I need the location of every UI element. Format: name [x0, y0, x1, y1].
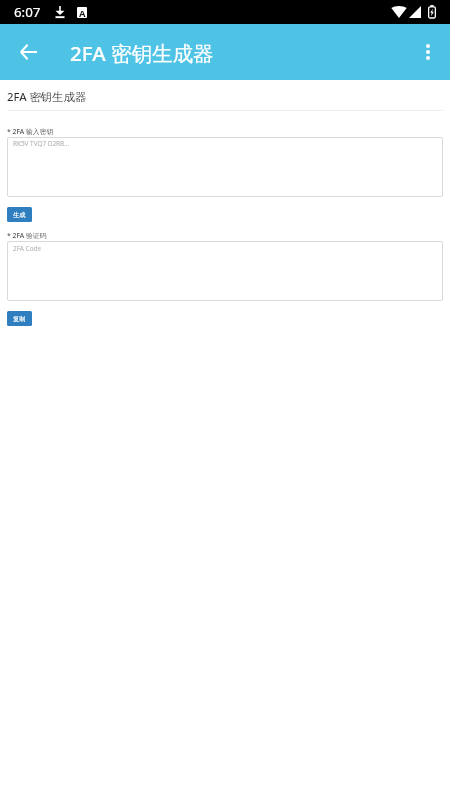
- button[interactable]: RK5V TVQ7 D2RB...: [7, 137, 443, 197]
- staticText: A: [79, 7, 86, 18]
- staticText: RK5V TVQ7 D2RB...: [13, 139, 70, 148]
- staticText: 2FA 密钥生成器: [7, 89, 87, 104]
- staticText: * 2FA 输入密钥: [7, 127, 54, 136]
- staticText: 6:07: [14, 3, 41, 21]
- staticText: 2FA Code: [13, 244, 42, 253]
- button[interactable]: 生成: [7, 207, 32, 222]
- staticText: * 2FA 验证码: [7, 231, 47, 240]
- staticText: 生成: [13, 211, 26, 219]
- staticText: 复制: [13, 315, 26, 323]
- staticText: 2FA 密钥生成器: [70, 39, 214, 67]
- button[interactable]: 复制: [7, 311, 32, 326]
- button[interactable]: Back: [12, 36, 44, 68]
- button[interactable]: More options: [414, 36, 442, 68]
- button[interactable]: 2FA Code: [7, 241, 443, 301]
